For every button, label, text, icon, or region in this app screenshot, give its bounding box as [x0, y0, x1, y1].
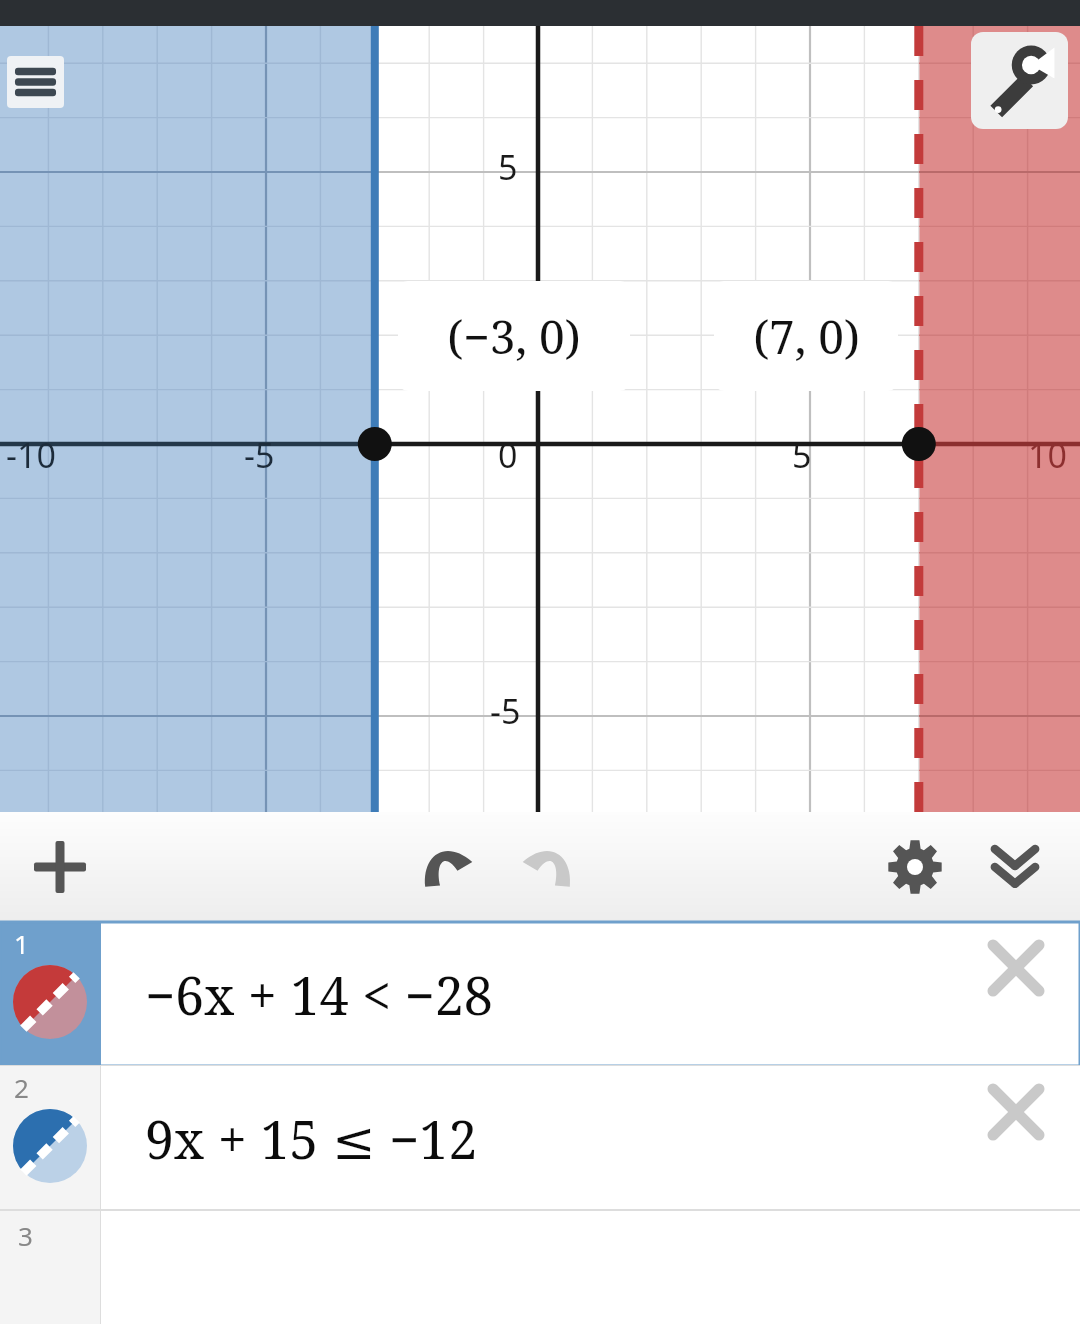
button[interactable]: Collapse keypad — [970, 812, 1060, 922]
staticText: (−3, 0) — [447, 305, 581, 368]
staticText: 9x + 15 ≤ −12 — [145, 1103, 478, 1174]
staticText: -5 — [244, 432, 275, 478]
button[interactable]: Delete expression 2 — [976, 1072, 1056, 1152]
button[interactable]: 1 — [0, 922, 1080, 1066]
staticText: 2 — [14, 1070, 29, 1105]
button[interactable]: Settings tools — [971, 32, 1068, 129]
staticText: 3 — [18, 1218, 33, 1253]
button[interactable]: Add expression — [20, 812, 100, 922]
staticText: (7, 0) — [753, 305, 860, 368]
button[interactable]: (7, 0) — [714, 281, 898, 391]
button[interactable]: Menu — [7, 56, 64, 108]
staticText: 1 — [14, 926, 29, 961]
button[interactable]: Graph settings — [870, 812, 960, 922]
staticText: 5 — [792, 432, 812, 478]
button[interactable]: (−3, 0) — [398, 281, 630, 391]
button[interactable]: Redo — [500, 812, 590, 922]
staticText: -10 — [6, 432, 56, 478]
staticText: 10 — [1028, 432, 1067, 478]
staticText: -5 — [490, 688, 521, 734]
button[interactable]: Undo — [405, 812, 495, 922]
staticText: 5 — [498, 144, 518, 190]
button[interactable]: Delete expression 1 — [976, 928, 1056, 1008]
staticText: 0 — [498, 432, 518, 478]
button[interactable]: 2 — [0, 1066, 1080, 1210]
staticText: −6x + 14 < −28 — [145, 959, 493, 1030]
